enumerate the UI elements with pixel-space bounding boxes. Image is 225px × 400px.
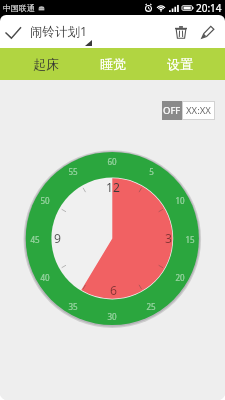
staticText: XX:XX: [186, 104, 211, 117]
staticText: 5: [149, 166, 154, 177]
button[interactable]: Delete: [167, 15, 194, 48]
button[interactable]: OFF: [162, 101, 215, 120]
staticText: 60: [107, 156, 117, 167]
staticText: 55: [68, 166, 78, 177]
staticText: 3: [165, 230, 172, 247]
staticText: 20: [175, 272, 185, 283]
staticText: 15: [185, 234, 195, 245]
staticText: 中国联通: [3, 3, 35, 13]
button[interactable]: 闹铃计划1: [0, 15, 98, 48]
button[interactable]: 睡觉: [79, 48, 146, 80]
staticText: 40: [40, 272, 50, 283]
staticText: 35: [68, 301, 78, 312]
staticText: 6: [110, 282, 117, 299]
staticText: 25: [146, 301, 156, 312]
staticText: 45: [30, 234, 40, 245]
button[interactable]: 设置: [146, 48, 213, 80]
button[interactable]: Edit: [194, 15, 221, 48]
staticText: 睡觉: [100, 56, 126, 72]
staticText: 设置: [167, 56, 193, 72]
staticText: 12: [106, 179, 120, 196]
button[interactable]: 起床: [12, 48, 79, 80]
staticText: 9: [54, 230, 61, 247]
staticText: 20:14: [196, 1, 222, 15]
staticText: 50: [40, 195, 50, 206]
staticText: 10: [175, 195, 185, 206]
staticText: 起床: [33, 56, 59, 72]
staticText: 闹铃计划1: [30, 23, 88, 40]
staticText: OFF: [163, 104, 181, 117]
staticText: 30: [107, 311, 117, 322]
